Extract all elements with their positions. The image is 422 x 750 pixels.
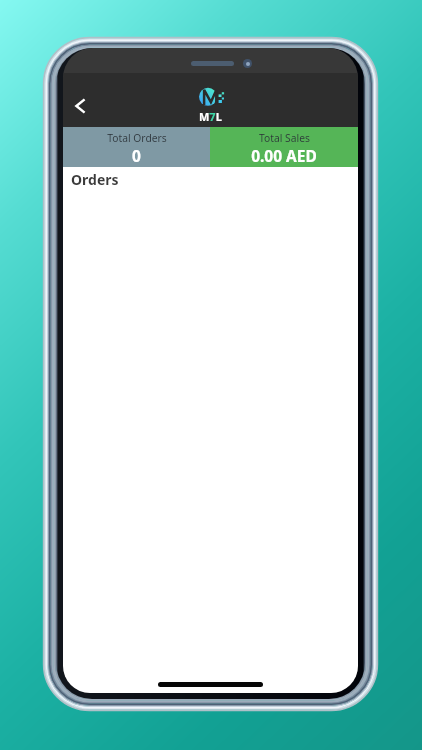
staticText: 0.00 AED bbox=[251, 145, 317, 166]
staticText: Total Sales bbox=[259, 131, 310, 145]
staticText: 0 bbox=[132, 145, 141, 166]
button[interactable]: Total Sales bbox=[210, 127, 358, 167]
staticText: Total Orders bbox=[107, 131, 167, 145]
button[interactable]: Total Orders bbox=[63, 127, 210, 167]
staticText: M7L bbox=[199, 109, 222, 124]
button[interactable]: Back bbox=[63, 88, 98, 124]
staticText: Orders bbox=[71, 170, 119, 189]
